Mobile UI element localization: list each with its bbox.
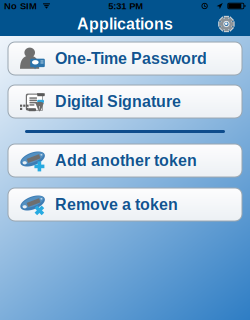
button[interactable]: Remove a token <box>8 188 242 221</box>
staticText: Add another token <box>55 152 197 169</box>
staticText: Digital Signature <box>55 93 181 110</box>
staticText: No SIM <box>4 1 37 11</box>
staticText: One-Time Password <box>55 50 207 67</box>
button[interactable]: Settings <box>211 12 250 36</box>
staticText: Applications <box>77 15 173 33</box>
button[interactable]: Add another token <box>8 144 242 177</box>
button[interactable]: One-Time Password <box>8 42 242 75</box>
staticText: 5:31 PM <box>108 1 143 11</box>
button[interactable]: Digital Signature <box>8 85 242 118</box>
staticText: Remove a token <box>55 196 178 213</box>
